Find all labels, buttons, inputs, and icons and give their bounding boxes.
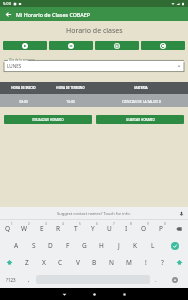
button[interactable]: H	[93, 237, 110, 254]
button[interactable]: Backspace	[169, 220, 188, 237]
button[interactable]: Pause	[49, 41, 93, 50]
button[interactable]: N	[103, 254, 120, 271]
button[interactable]: Home	[79, 288, 109, 300]
button[interactable]: Shift right	[171, 254, 188, 271]
button[interactable]: M	[120, 254, 137, 271]
staticText: R	[56, 224, 61, 233]
button[interactable]: HORA DE INICIO	[0, 82, 47, 94]
button[interactable]: O	[135, 220, 152, 237]
staticText: 7	[113, 222, 115, 226]
staticText: 3	[45, 222, 47, 226]
button[interactable]: C	[52, 254, 69, 271]
staticText: ,	[28, 276, 30, 284]
button[interactable]: Día de la semana	[4, 60, 184, 72]
button[interactable]: MATERIA	[94, 82, 188, 94]
button[interactable]: G	[76, 237, 93, 254]
button[interactable]: Period	[150, 271, 162, 288]
button[interactable]: Back	[0, 7, 16, 21]
button[interactable]: P	[152, 220, 169, 237]
button[interactable]: V	[69, 254, 86, 271]
staticText: !	[145, 258, 147, 267]
staticText: 4	[62, 222, 64, 226]
button[interactable]: K	[127, 237, 144, 254]
staticText: 0	[164, 222, 166, 226]
staticText: ?	[161, 258, 164, 267]
button[interactable]: Emoji	[162, 271, 188, 288]
button[interactable]: CIENCIAS DE LA SALUD II	[94, 94, 188, 107]
button[interactable]: Recents	[109, 288, 139, 300]
button[interactable]: Shift	[0, 254, 18, 271]
staticText: M	[126, 258, 132, 267]
button[interactable]: I	[118, 220, 135, 237]
staticText: H	[99, 241, 104, 250]
button[interactable]: !	[137, 254, 154, 271]
button[interactable]: S	[25, 237, 42, 254]
staticText: ?123	[6, 277, 16, 283]
staticText: Mi Horario de Clases COBAEP	[16, 11, 90, 18]
button[interactable]: D	[42, 237, 59, 254]
staticText: N	[109, 258, 114, 267]
staticText: GUARDAR HORARIO	[126, 118, 155, 122]
staticText: Y	[91, 224, 95, 233]
button[interactable]: Enter	[161, 237, 188, 254]
button[interactable]: J	[110, 237, 127, 254]
staticText: S	[32, 241, 36, 250]
button[interactable]: A	[8, 237, 25, 254]
staticText: Q	[5, 224, 11, 233]
staticText: Suggest contact names? Touch for info.	[57, 211, 131, 216]
button[interactable]: E	[33, 220, 50, 237]
button[interactable]: B	[86, 254, 103, 271]
staticText: C	[58, 258, 63, 267]
button[interactable]: HORA DE TERMINO	[47, 82, 94, 94]
button[interactable]: GUARDAR HORARIO	[96, 115, 184, 124]
staticText: O	[141, 224, 147, 233]
button[interactable]: 10:00	[47, 94, 94, 107]
button[interactable]: Comma	[22, 271, 36, 288]
button[interactable]: Clock	[95, 41, 139, 50]
button[interactable]: Y	[84, 220, 101, 237]
button[interactable]: F	[59, 237, 76, 254]
staticText: T	[74, 224, 78, 233]
button[interactable]: ?	[154, 254, 171, 271]
button[interactable]: Q	[0, 220, 16, 237]
button[interactable]: X	[35, 254, 52, 271]
staticText: F	[66, 241, 70, 250]
staticText: G	[82, 241, 87, 250]
staticText: I	[125, 224, 128, 233]
staticText: V	[76, 258, 80, 267]
button[interactable]: L	[144, 237, 161, 254]
staticText: CIENCIAS DE LA SALUD II	[122, 99, 161, 103]
staticText: J	[118, 241, 120, 250]
button[interactable]: Play	[3, 41, 47, 50]
button[interactable]: U	[101, 220, 118, 237]
button[interactable]: Back	[49, 288, 79, 300]
staticText: 6	[96, 222, 98, 226]
staticText: A	[14, 241, 19, 250]
staticText: 1	[11, 222, 13, 226]
staticText: D	[48, 241, 53, 250]
staticText: L	[151, 241, 155, 250]
staticText: 10:00	[66, 99, 75, 103]
button[interactable]: 08:00	[0, 94, 47, 107]
staticText: 2	[28, 222, 30, 226]
staticText: 5:00	[3, 1, 11, 6]
button[interactable]: W	[16, 220, 33, 237]
button[interactable]: ?123	[0, 271, 22, 288]
staticText: K	[133, 241, 138, 250]
button[interactable]: VISUALIZAR HORARIO	[4, 115, 92, 124]
button[interactable]: Voice input	[178, 210, 185, 217]
staticText: E	[40, 224, 44, 233]
staticText: VISUALIZAR HORARIO	[32, 118, 64, 122]
staticText: 9	[147, 222, 149, 226]
staticText: MATERIA	[134, 86, 148, 90]
button[interactable]: Refresh	[141, 41, 185, 50]
button[interactable]: T	[67, 220, 84, 237]
button[interactable]: Z	[18, 254, 35, 271]
staticText: B	[92, 258, 97, 267]
button[interactable]: R	[50, 220, 67, 237]
staticText: Z	[25, 258, 29, 267]
staticText: Día de la semana	[9, 58, 35, 62]
staticText: HORA DE TERMINO	[56, 86, 85, 90]
staticText: 8	[130, 222, 132, 226]
